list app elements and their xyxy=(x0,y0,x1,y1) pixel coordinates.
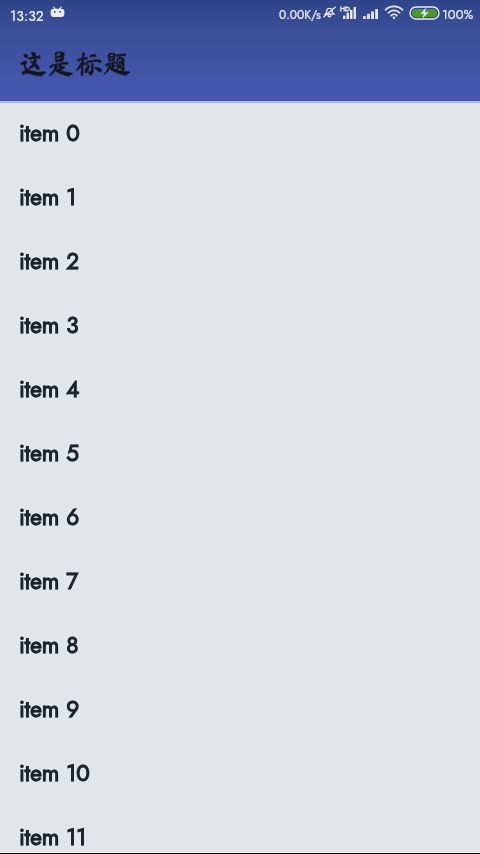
staticText: HD xyxy=(340,4,350,14)
staticText: 0.00K/s xyxy=(279,6,321,23)
staticText: item 8 xyxy=(19,629,79,662)
staticText: item 1 xyxy=(19,181,77,214)
staticText: item 7 xyxy=(19,565,78,598)
staticText: item 9 xyxy=(19,693,80,726)
staticText: item 3 xyxy=(19,309,79,342)
staticText: 这是标题 xyxy=(19,49,132,77)
button[interactable]: item 11 xyxy=(0,807,480,854)
staticText: 13:32 xyxy=(10,6,44,26)
staticText: item 6 xyxy=(19,501,80,534)
staticText: item 2 xyxy=(19,245,79,278)
button[interactable]: item 5 xyxy=(0,423,480,487)
button[interactable]: item 8 xyxy=(0,615,480,679)
other: Battery charging xyxy=(410,7,439,19)
button[interactable]: item 3 xyxy=(0,295,480,359)
other: Mobile signal SIM 2 xyxy=(363,9,378,19)
staticText: item 4 xyxy=(19,373,80,406)
button[interactable]: item 2 xyxy=(0,231,480,295)
staticText: 这是标题 xyxy=(19,49,132,77)
staticText: item 8 xyxy=(19,629,79,662)
staticText: item 0 xyxy=(19,117,80,150)
staticText: item 0 xyxy=(19,117,80,150)
staticText: item 11 xyxy=(19,821,87,854)
button[interactable]: item 6 xyxy=(0,487,480,551)
staticText: item 5 xyxy=(19,437,79,470)
staticText: item 1 xyxy=(19,181,77,214)
staticText: item 4 xyxy=(19,373,80,406)
other: Silent mode xyxy=(322,6,337,18)
other: Mobile signal SIM 1 xyxy=(343,7,356,19)
staticText: item 11 xyxy=(19,821,87,854)
button[interactable]: 这是标题 xyxy=(19,49,132,77)
button[interactable]: item 4 xyxy=(0,359,480,423)
button[interactable]: item 10 xyxy=(0,743,480,807)
staticText: item 3 xyxy=(19,309,79,342)
other: Android system notification xyxy=(50,6,65,18)
button[interactable]: item 9 xyxy=(0,679,480,743)
button[interactable]: item 7 xyxy=(0,551,480,615)
button[interactable]: item 1 xyxy=(0,167,480,231)
staticText: 100% xyxy=(442,5,474,24)
staticText: item 6 xyxy=(19,501,80,534)
staticText: item 9 xyxy=(19,693,80,726)
staticText: item 10 xyxy=(19,757,90,790)
button[interactable]: item 0 xyxy=(0,103,480,167)
staticText: item 7 xyxy=(19,565,78,598)
staticText: item 5 xyxy=(19,437,79,470)
staticText: item 10 xyxy=(19,757,90,790)
staticText: item 2 xyxy=(19,245,79,278)
other: Wi-Fi xyxy=(384,7,404,19)
